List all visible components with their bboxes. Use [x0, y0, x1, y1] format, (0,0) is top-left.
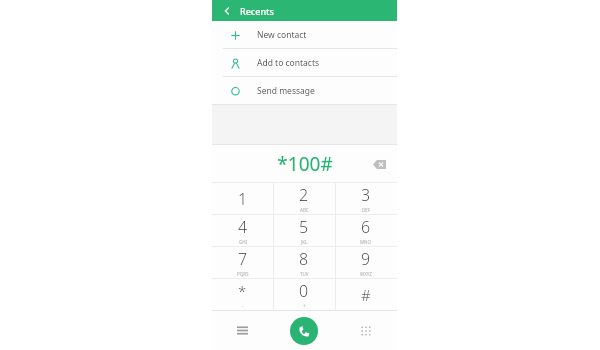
button[interactable]: Menu: [212, 311, 273, 350]
button[interactable]: 4: [212, 215, 273, 246]
staticText: 9: [361, 248, 371, 270]
staticText: *: [238, 281, 247, 301]
button[interactable]: 5: [273, 215, 335, 246]
button[interactable]: *: [212, 279, 273, 310]
staticText: 2: [299, 184, 309, 206]
button[interactable]: Keypad: [335, 311, 397, 350]
button[interactable]: 6: [335, 215, 397, 246]
staticText: JKL: [301, 239, 308, 245]
button[interactable]: 0: [273, 279, 335, 310]
staticText: +: [303, 303, 306, 309]
button[interactable]: 2: [273, 183, 335, 214]
staticText: 5: [299, 216, 309, 238]
button[interactable]: 1: [212, 183, 273, 214]
staticText: *100#: [277, 151, 333, 177]
staticText: .: [242, 302, 244, 308]
staticText: ABC: [300, 207, 309, 213]
staticText: 4: [238, 216, 248, 238]
staticText: WXYZ: [360, 271, 372, 277]
staticText: #: [361, 285, 371, 305]
button[interactable]: Send message: [212, 77, 397, 104]
staticText: 8: [299, 248, 309, 270]
button[interactable]: 9: [335, 247, 397, 278]
button[interactable]: Back: [220, 4, 234, 18]
staticText: Recents: [240, 5, 274, 17]
staticText: 1: [238, 188, 248, 210]
button[interactable]: 8: [273, 247, 335, 278]
button[interactable]: Add to contacts: [212, 49, 397, 76]
button[interactable]: #: [335, 279, 397, 310]
button[interactable]: 3: [335, 183, 397, 214]
staticText: 7: [238, 248, 248, 270]
staticText: GHI: [239, 239, 248, 245]
staticText: 0: [299, 280, 309, 302]
button[interactable]: Call: [273, 311, 335, 350]
staticText: 6: [361, 216, 371, 238]
staticText: PQRS: [237, 271, 249, 277]
button[interactable]: New contact: [212, 21, 397, 48]
staticText: TUV: [300, 271, 309, 277]
staticText: DEF: [362, 207, 371, 213]
staticText: MNO: [360, 239, 372, 245]
staticText: New contact: [257, 29, 307, 41]
button[interactable]: 7: [212, 247, 273, 278]
staticText: Add to contacts: [257, 57, 320, 69]
button[interactable]: Backspace: [370, 155, 388, 173]
staticText: Send message: [257, 85, 315, 97]
staticText: 3: [361, 184, 371, 206]
